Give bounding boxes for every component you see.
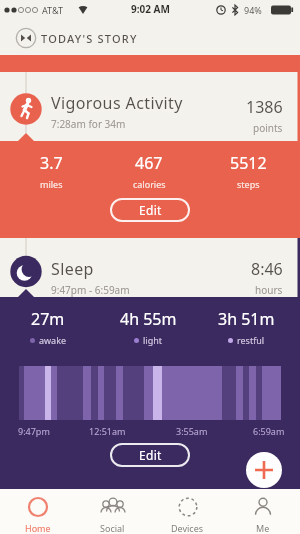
staticText: Sleep	[51, 258, 94, 280]
button[interactable]: Edit	[110, 443, 190, 467]
staticText: 3h 51m	[218, 308, 275, 330]
staticText: 6:59am	[253, 425, 285, 437]
staticText: 9:02 AM	[131, 2, 170, 16]
staticText: light	[143, 334, 162, 346]
staticText: hours	[255, 283, 283, 297]
staticText: Devices	[171, 522, 204, 534]
staticText: calories	[133, 178, 166, 190]
staticText: awake	[39, 334, 67, 346]
staticText: Social	[100, 522, 125, 534]
staticText: 12:51am	[89, 425, 126, 437]
button[interactable]	[246, 452, 282, 488]
staticText: Me	[256, 522, 270, 534]
button[interactable]: TODAY'S STORY	[0, 20, 300, 55]
button[interactable]: Vigorous Activity	[0, 72, 300, 141]
button[interactable]: Social	[75, 489, 150, 534]
staticText: 27m	[31, 308, 65, 330]
staticText: 8:46	[251, 258, 283, 280]
staticText: 94%	[244, 4, 262, 16]
staticText: TODAY'S STORY	[41, 31, 138, 46]
staticText: 467	[135, 152, 163, 174]
staticText: steps	[237, 178, 260, 190]
staticText: Home	[25, 522, 51, 534]
staticText: 3:55am	[176, 425, 208, 437]
staticText: Edit	[139, 202, 162, 218]
staticText: points	[253, 121, 283, 135]
staticText: 4h 55m	[120, 308, 177, 330]
staticText: Vigorous Activity	[51, 92, 183, 114]
staticText: miles	[40, 178, 63, 190]
button[interactable]: Home	[0, 489, 75, 534]
staticText: AT&T	[42, 4, 63, 16]
staticText: restful	[237, 334, 265, 346]
button[interactable]: Devices	[150, 489, 225, 534]
staticText: 5512	[230, 152, 267, 174]
staticText: Edit	[139, 447, 162, 463]
staticText: 9:47pm	[18, 425, 50, 437]
button[interactable]: Me	[225, 489, 300, 534]
button[interactable]: Edit	[110, 198, 190, 222]
staticText: 9:47pm - 6:59am	[51, 283, 130, 297]
staticText: 1386	[246, 96, 283, 118]
button[interactable]: Sleep	[0, 238, 300, 297]
staticText: 3.7	[40, 152, 63, 174]
staticText: 7:28am for 34m	[51, 117, 126, 131]
